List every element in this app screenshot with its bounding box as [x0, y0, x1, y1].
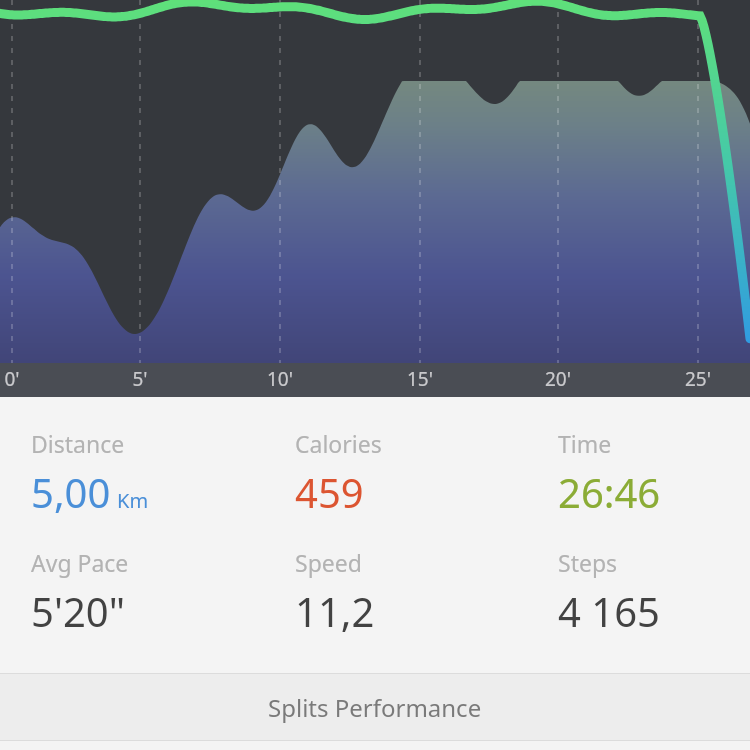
staticText: Km	[117, 487, 149, 514]
button[interactable]: Time	[558, 424, 750, 519]
button[interactable]: Calories	[295, 424, 525, 519]
staticText: Splits Performance	[268, 691, 482, 724]
staticText: Avg Pace	[31, 547, 129, 578]
button[interactable]: Avg Pace	[31, 543, 261, 638]
staticText: 25'	[672, 366, 724, 392]
staticText: 26:46	[558, 465, 661, 519]
button[interactable]: Speed	[295, 543, 525, 638]
staticText: 10'	[254, 366, 306, 392]
staticText: 20'	[532, 366, 584, 392]
staticText: 5,00	[31, 465, 111, 519]
staticText: 459	[295, 465, 364, 519]
staticText: 0'	[0, 366, 38, 392]
staticText: 5'20"	[31, 584, 125, 638]
staticText: Speed	[295, 547, 362, 578]
staticText: Steps	[558, 547, 618, 578]
staticText: 4 165	[558, 584, 660, 638]
button[interactable]: Steps	[558, 543, 750, 638]
staticText: 5'	[114, 366, 166, 392]
staticText: Calories	[295, 428, 382, 459]
staticText: 15'	[394, 366, 446, 392]
button[interactable]: Distance	[31, 424, 261, 519]
staticText: Distance	[31, 428, 125, 459]
button[interactable]: Splits Performance	[0, 674, 750, 740]
staticText: 11,2	[295, 584, 375, 638]
staticText: Time	[558, 428, 612, 459]
